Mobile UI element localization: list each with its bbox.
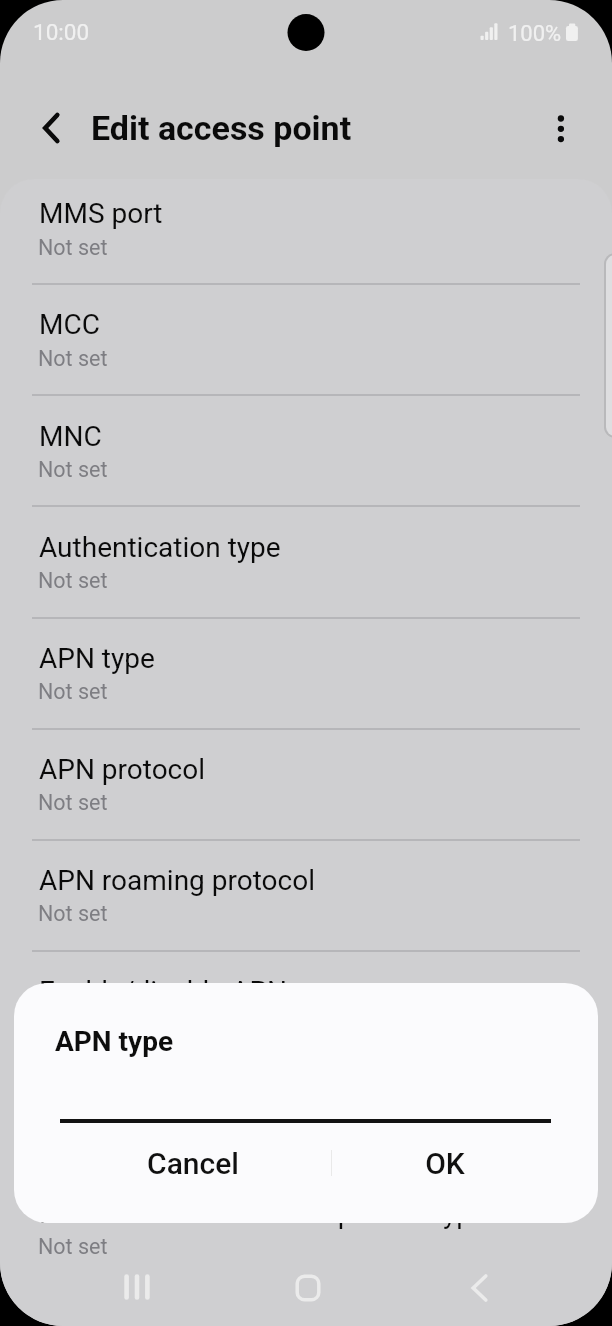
staticText: Cancel	[147, 1146, 239, 1181]
staticText: APN type	[55, 1025, 174, 1058]
button[interactable]	[0, 1061, 612, 1172]
staticText: MMS port	[39, 197, 163, 230]
button[interactable]	[0, 950, 612, 1061]
button[interactable]: More options	[534, 102, 586, 154]
staticText: APN roaming protocol	[39, 864, 315, 897]
staticText: MCC	[39, 308, 100, 341]
staticText: APN type	[39, 642, 155, 675]
button[interactable]: Back	[23, 100, 79, 156]
staticText: Edit access point	[91, 108, 352, 148]
staticText: 10:00	[33, 19, 90, 45]
button[interactable]	[0, 394, 612, 505]
staticText: Not set	[38, 679, 108, 704]
staticText: Not set	[38, 901, 108, 926]
button[interactable]	[0, 172, 612, 283]
staticText: Not set	[38, 790, 108, 815]
staticText: 100%	[508, 21, 562, 47]
staticText: Mobile virtual network operator type	[39, 1197, 487, 1230]
staticText: APN protocol	[39, 753, 206, 786]
staticText: MNC	[39, 420, 102, 453]
staticText: Not set	[38, 457, 108, 482]
staticText: Not set	[38, 1234, 108, 1259]
button[interactable]	[0, 617, 612, 728]
button[interactable]	[0, 1172, 612, 1283]
button[interactable]: Home	[236, 1247, 380, 1326]
button[interactable]	[0, 283, 612, 394]
button[interactable]: OK	[345, 1132, 545, 1194]
button[interactable]	[0, 839, 612, 950]
staticText: Enable/disable APN	[39, 975, 288, 1008]
button[interactable]	[0, 728, 612, 839]
staticText: Authentication type	[39, 531, 281, 564]
staticText: APN enabled	[38, 1012, 163, 1037]
staticText: Not set	[38, 346, 108, 371]
button[interactable]	[0, 505, 612, 616]
button[interactable]: Recent apps	[65, 1246, 209, 1326]
staticText: Not set	[38, 235, 108, 260]
staticText: Not set	[38, 568, 108, 593]
staticText: OK	[425, 1146, 465, 1181]
button[interactable]: Cancel	[44, 1132, 342, 1194]
